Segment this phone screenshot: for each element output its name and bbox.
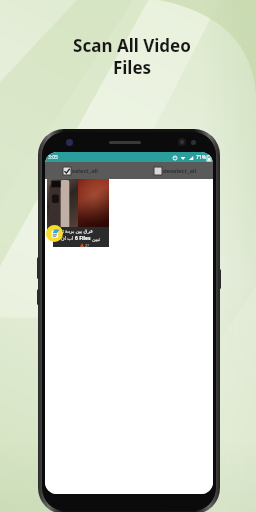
staticText: select_all [72,167,98,175]
button[interactable]: select_all [61,165,100,177]
staticText: Scan All Video Files [26,34,238,79]
staticText: deselect_all [163,167,197,175]
staticText: 6 Files [75,235,91,242]
staticText: 3:05 [48,154,58,161]
staticText: ثبين [92,236,101,242]
staticText: 71% [196,154,206,161]
button[interactable]: deselect_all [152,165,199,177]
staticText: فرق بين بردة ثا [61,228,93,235]
button[interactable]: Scan files [46,225,63,242]
staticText: 2? [85,243,90,247]
staticText: اب ان [61,235,74,242]
button[interactable]: فرق بين بردة ثا [47,179,109,249]
